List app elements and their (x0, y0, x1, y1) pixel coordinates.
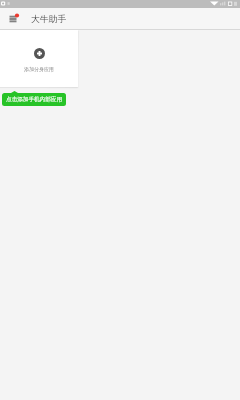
staticText: 添加分身应用 (24, 66, 54, 72)
staticText: 大牛助手 (31, 14, 67, 25)
button[interactable]: 点击添加手机内部应用 (2, 91, 66, 106)
button[interactable]: 添加分身应用 (0, 30, 78, 87)
button[interactable]: Open navigation menu (5, 11, 21, 27)
staticText: 点击添加手机内部应用 (6, 96, 62, 103)
